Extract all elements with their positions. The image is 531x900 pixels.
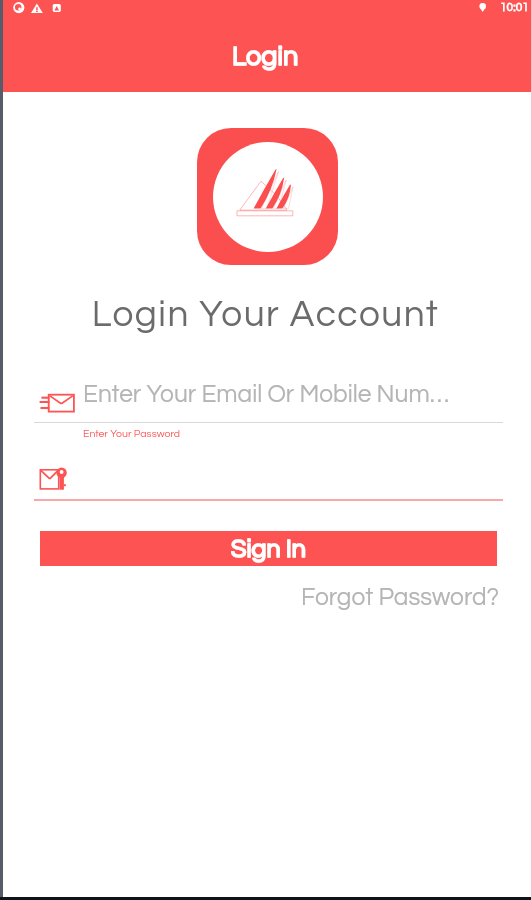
staticText: Login — [232, 43, 299, 71]
other: Password — [38, 466, 68, 492]
staticText: Sign In — [231, 536, 306, 562]
staticText: Enter Your Password — [83, 428, 181, 439]
other: Email — [38, 392, 76, 416]
button[interactable]: Email — [34, 376, 503, 424]
staticText: Forgot Password? — [301, 585, 500, 610]
staticText: Login Your Account — [0, 296, 531, 334]
staticText: Sign In — [231, 536, 306, 562]
button[interactable]: Forgot Password? — [297, 581, 504, 614]
staticText: Enter Your Email Or Mobile Num… — [83, 382, 449, 407]
staticText: 10:01 — [500, 1, 529, 13]
button[interactable]: Sign In — [40, 531, 497, 566]
button[interactable]: Password — [34, 460, 503, 501]
staticText: Login — [232, 43, 299, 71]
